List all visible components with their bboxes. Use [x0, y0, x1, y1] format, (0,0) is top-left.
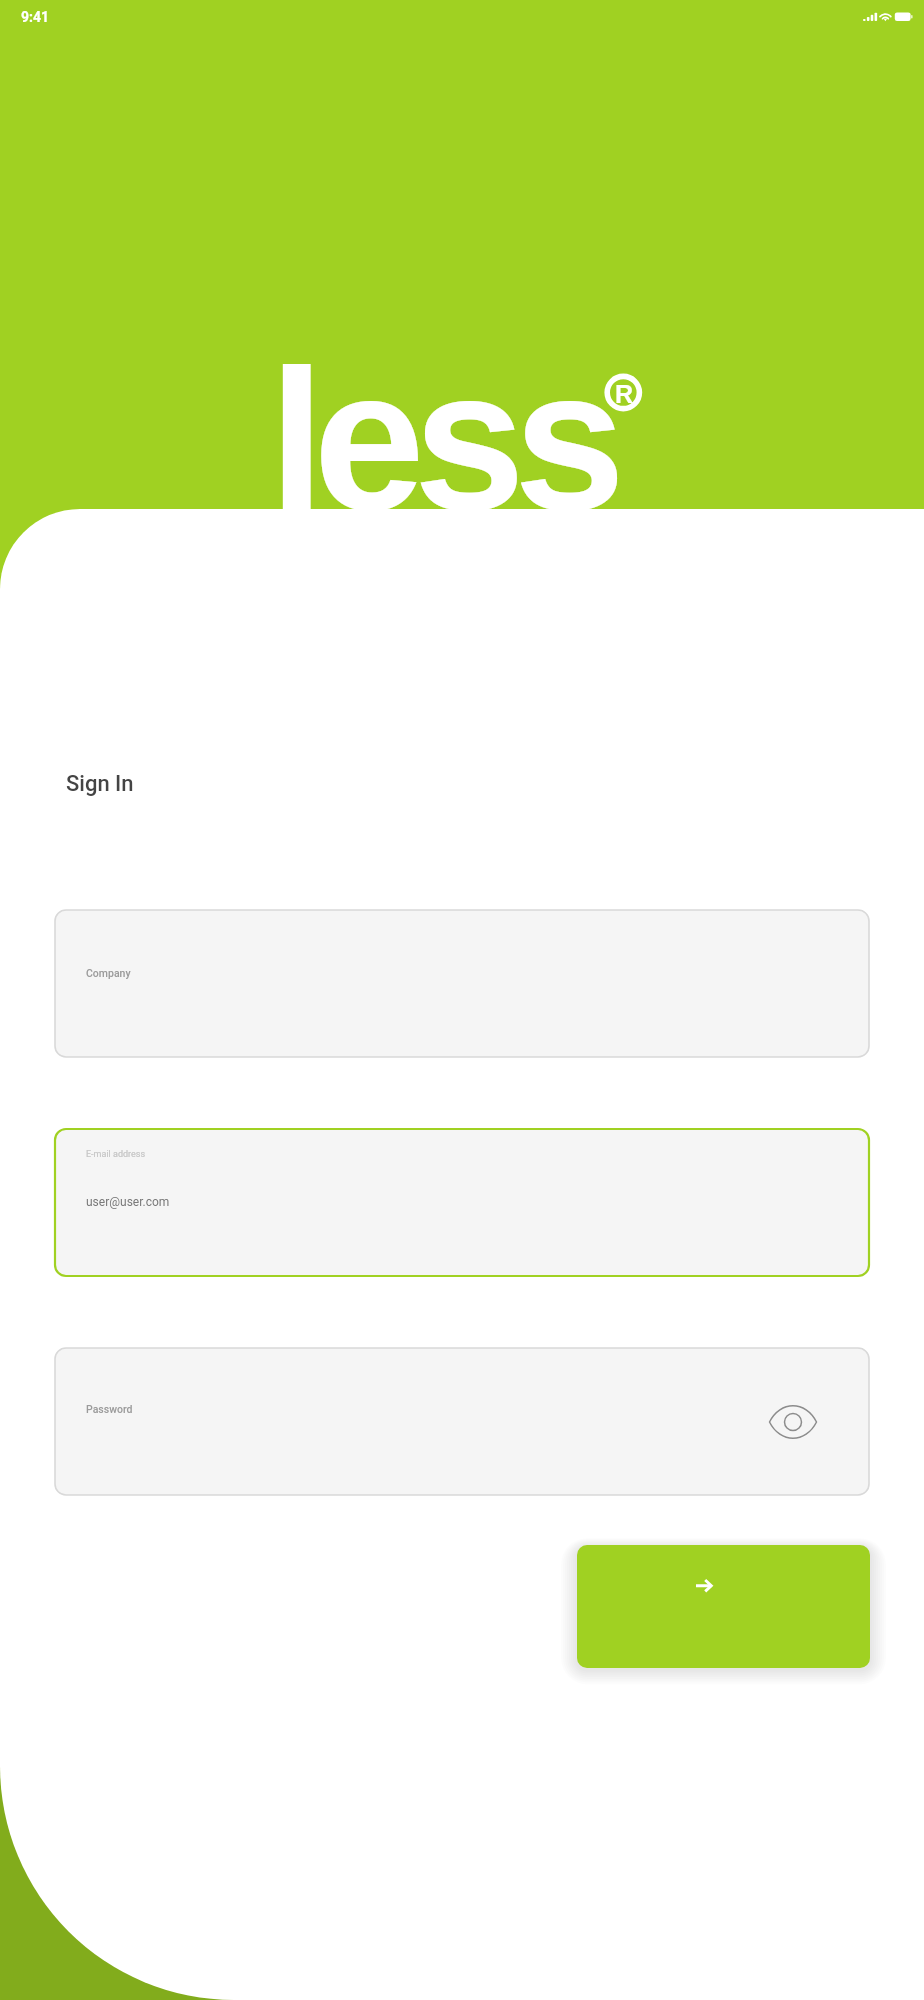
button[interactable]: E-mail address: [55, 1129, 869, 1276]
button[interactable]: Password: [55, 1348, 869, 1495]
staticText: user@user.com: [86, 1195, 170, 1209]
button[interactable]: Sign in: [577, 1545, 870, 1668]
button[interactable]: Company: [55, 910, 869, 1057]
staticText: E-mail address: [86, 1149, 146, 1160]
staticText: less: [269, 328, 615, 551]
button[interactable]: Show password: [758, 1387, 828, 1457]
staticText: Company: [86, 967, 131, 979]
staticText: Password: [86, 1403, 133, 1415]
staticText: 9:41: [21, 9, 50, 25]
staticText: R: [615, 380, 634, 408]
staticText: Sign In: [66, 771, 134, 797]
